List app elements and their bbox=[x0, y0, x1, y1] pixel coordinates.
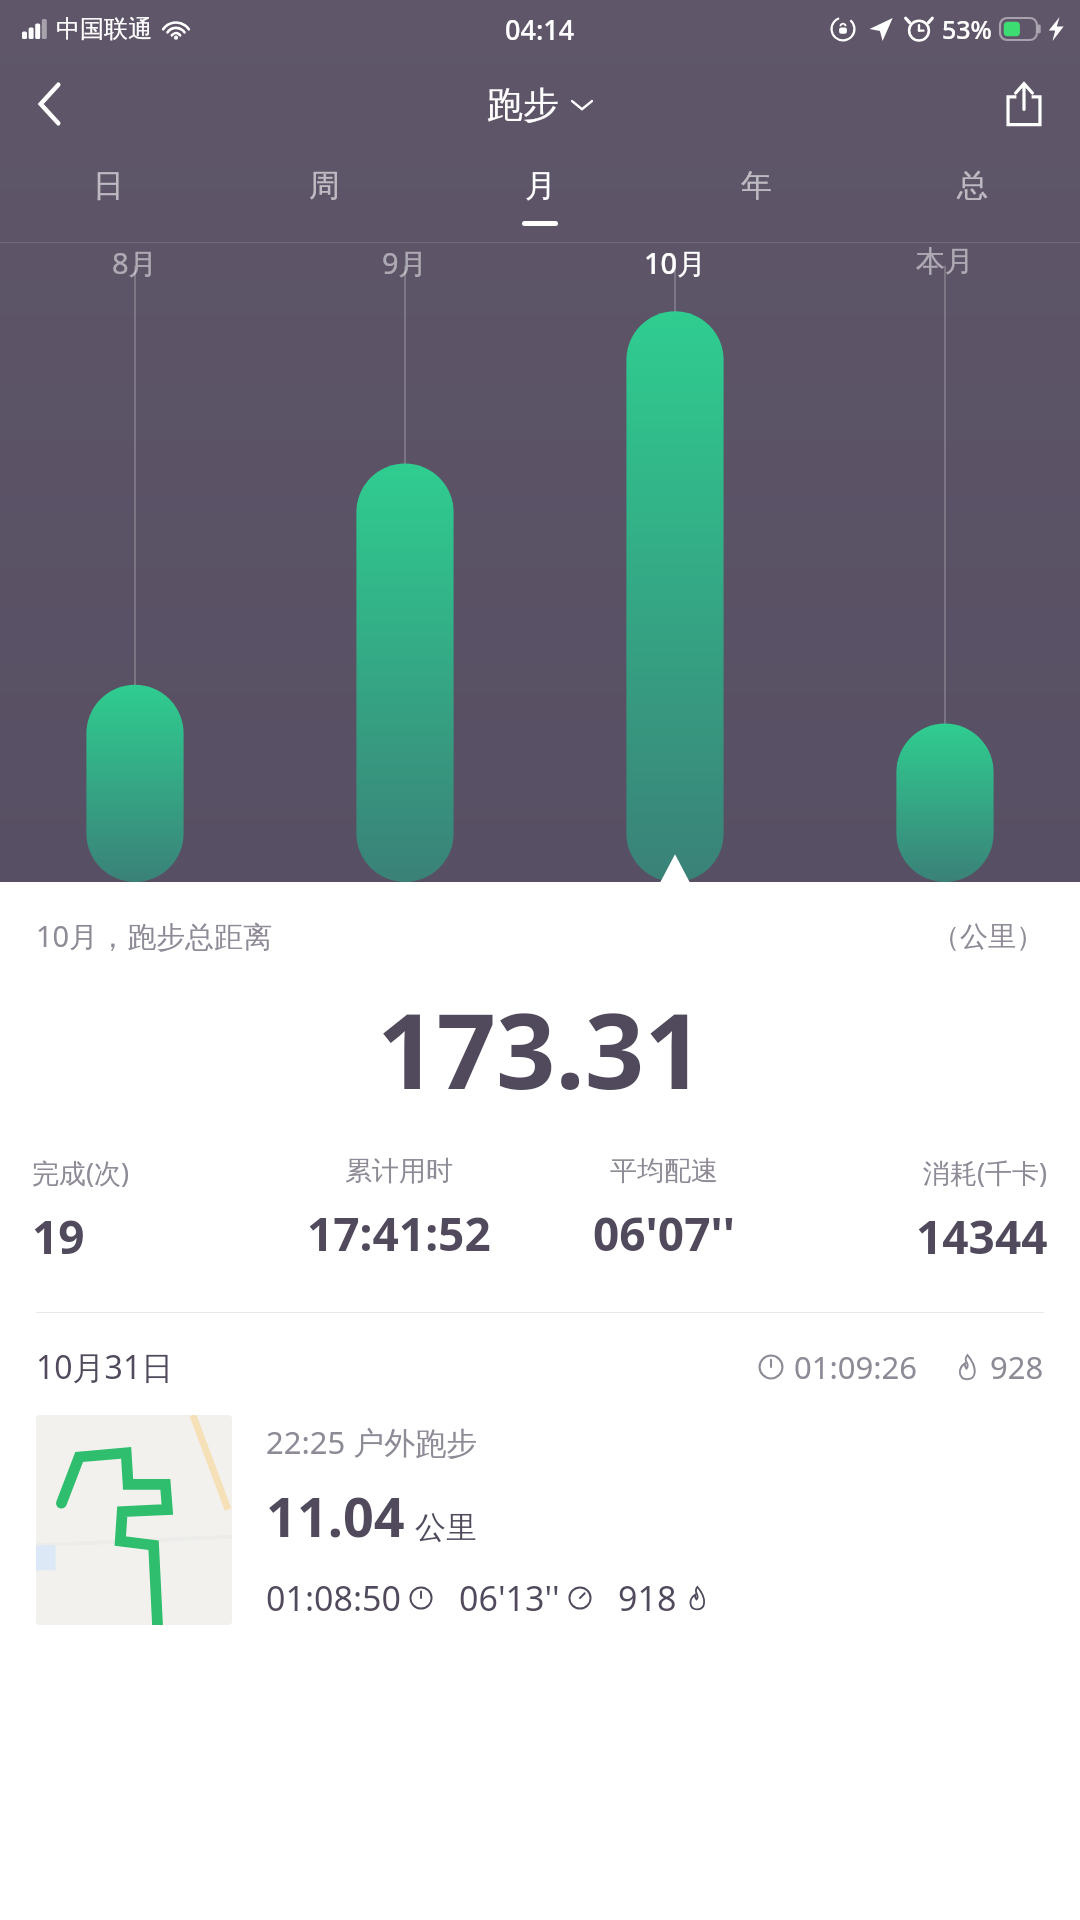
staticText: 日 bbox=[93, 166, 124, 205]
staticText: 19 bbox=[32, 1205, 85, 1268]
button[interactable]: 累计用时 bbox=[258, 1154, 540, 1265]
staticText: 中国联通 bbox=[56, 14, 152, 44]
button[interactable]: 9月 bbox=[270, 243, 540, 283]
staticText: 10月31日 bbox=[36, 1345, 174, 1389]
staticText: 月 bbox=[525, 166, 556, 205]
staticText: 928 bbox=[990, 1346, 1044, 1388]
staticText: 06'07'' bbox=[593, 1202, 735, 1265]
button[interactable]: 周 bbox=[216, 150, 432, 242]
button[interactable]: 完成(次) bbox=[32, 1154, 258, 1268]
button[interactable]: 日 bbox=[0, 150, 216, 242]
button[interactable]: 8月 bbox=[0, 243, 270, 283]
button[interactable]: 年 bbox=[648, 150, 864, 242]
staticText: 8月 bbox=[112, 243, 158, 283]
staticText: 年 bbox=[741, 166, 772, 205]
button[interactable]: 跑步 bbox=[487, 82, 593, 127]
staticText: 173.31 bbox=[377, 978, 704, 1120]
staticText: 04:14 bbox=[505, 11, 575, 48]
staticText: 本月 bbox=[916, 243, 974, 280]
staticText: 消耗(千卡) bbox=[923, 1154, 1048, 1191]
staticText: 10月，跑步总距离 bbox=[36, 916, 273, 956]
staticText: 跑步 bbox=[487, 82, 559, 127]
staticText: 53% bbox=[942, 12, 992, 46]
staticText: 17:41:52 bbox=[307, 1202, 491, 1265]
button[interactable]: 10月 bbox=[540, 243, 810, 283]
staticText: 完成(次) bbox=[32, 1154, 130, 1191]
staticText: 周 bbox=[309, 166, 340, 205]
button[interactable]: 22:25 户外跑步 bbox=[0, 1415, 1080, 1625]
button[interactable]: 本月 bbox=[810, 243, 1080, 280]
button[interactable]: Share bbox=[988, 68, 1060, 140]
staticText: 11.04 bbox=[266, 1479, 405, 1553]
button[interactable]: 月 bbox=[432, 150, 648, 242]
staticText: 总 bbox=[957, 166, 988, 205]
staticText: 01:08:50 bbox=[266, 1575, 401, 1621]
staticText: 14344 bbox=[916, 1205, 1048, 1268]
staticText: 公里 bbox=[415, 1508, 477, 1547]
button[interactable]: Back bbox=[14, 68, 86, 140]
staticText: 22:25 户外跑步 bbox=[266, 1421, 478, 1463]
staticText: 918 bbox=[618, 1575, 677, 1621]
staticText: 平均配速 bbox=[610, 1154, 718, 1188]
staticText: 06'13'' bbox=[459, 1575, 560, 1621]
staticText: 01:09:26 bbox=[794, 1346, 918, 1388]
staticText: 10月 bbox=[644, 243, 707, 283]
staticText: 9月 bbox=[382, 243, 428, 283]
staticText: （公里） bbox=[932, 919, 1044, 954]
button[interactable]: 总 bbox=[864, 150, 1080, 242]
button[interactable]: 平均配速 bbox=[540, 1154, 788, 1265]
button[interactable]: 消耗(千卡) bbox=[788, 1154, 1048, 1268]
staticText: 累计用时 bbox=[345, 1154, 453, 1188]
